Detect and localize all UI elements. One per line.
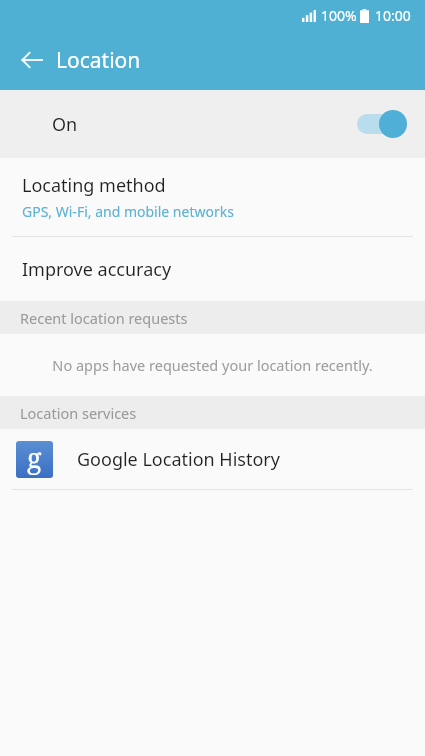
staticText: Recent location requests [20,308,188,328]
button[interactable]: Back [8,36,56,84]
staticText: 100% [321,6,357,25]
button[interactable]: On [0,90,425,158]
staticText: Locating method [22,173,166,198]
staticText: On [52,112,78,137]
staticText: g [27,441,42,476]
staticText: 10:00 [375,6,411,25]
staticText: Improve accuracy [22,257,172,282]
button[interactable]: Locating method [0,158,425,236]
button[interactable]: Improve accuracy [0,237,425,301]
staticText: Location services [20,403,137,423]
staticText: GPS, Wi-Fi, and mobile networks [22,202,234,221]
staticText: No apps have requested your location rec… [52,355,373,375]
button[interactable]: g [0,429,425,489]
staticText: Google Location History [77,447,280,472]
staticText: Location [56,46,141,75]
